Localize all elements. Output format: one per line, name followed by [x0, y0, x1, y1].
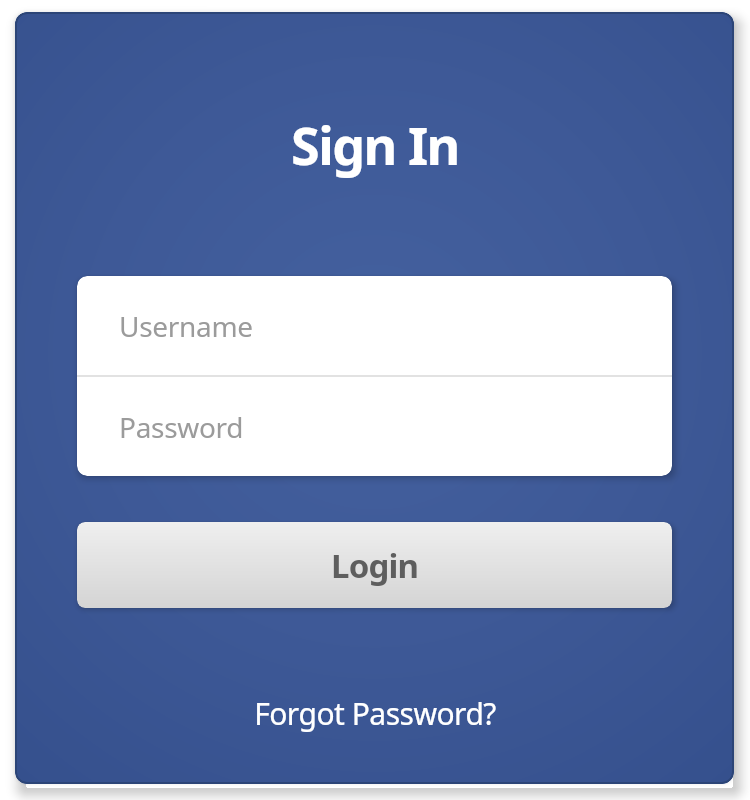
staticText: Password — [119, 408, 244, 446]
staticText: Login — [331, 543, 419, 588]
staticText: Forgot Password? — [254, 693, 496, 734]
staticText: Sign In — [291, 109, 459, 180]
staticText: Username — [119, 307, 253, 345]
